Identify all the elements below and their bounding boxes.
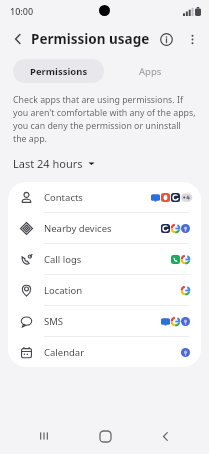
button[interactable]: Permissions	[13, 59, 104, 83]
staticText: SMS	[44, 315, 64, 328]
staticText: Permission usage	[31, 30, 150, 48]
button[interactable]: Location	[8, 275, 201, 305]
button[interactable]: SMS	[8, 306, 201, 336]
staticText: Call logs	[44, 253, 82, 266]
button[interactable]: Home	[88, 419, 122, 453]
staticText: Location	[44, 284, 83, 297]
staticText: Last 24 hours	[13, 156, 83, 171]
button[interactable]: Information	[153, 26, 179, 52]
button[interactable]: Back	[4, 25, 32, 53]
staticText: Permissions	[30, 65, 88, 78]
staticText: Calendar	[44, 346, 85, 359]
staticText: 10:00	[10, 5, 34, 17]
button[interactable]: Call logs	[8, 244, 201, 274]
staticText: Contacts	[44, 191, 83, 204]
button[interactable]: Nearby devices	[8, 213, 201, 243]
button[interactable]: Back	[148, 419, 182, 453]
staticText: Nearby devices	[44, 222, 112, 235]
staticText: Apps	[139, 65, 162, 78]
button[interactable]: More options	[179, 26, 205, 52]
button[interactable]: Recent apps	[27, 419, 61, 453]
staticText: Check apps that are using permissions. I…	[13, 94, 196, 144]
button[interactable]: Last 24 hours	[11, 154, 97, 173]
button[interactable]: Apps	[104, 59, 196, 83]
button[interactable]: Contacts	[8, 182, 201, 212]
button[interactable]: Calendar	[8, 337, 201, 367]
